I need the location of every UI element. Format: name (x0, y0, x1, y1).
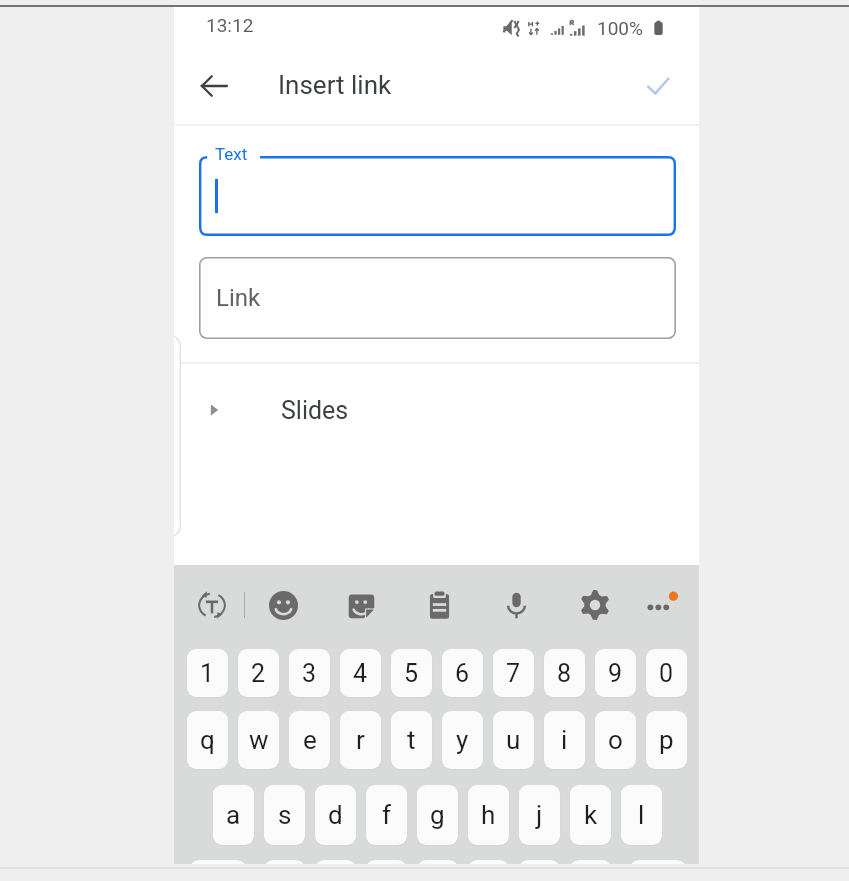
button[interactable]: Back (190, 62, 238, 110)
button[interactable]: y (442, 711, 483, 769)
staticText: i (561, 725, 568, 755)
button[interactable] (315, 860, 356, 864)
button[interactable] (519, 860, 560, 864)
staticText: d (328, 800, 343, 830)
staticText: o (608, 725, 623, 755)
button[interactable]: 3 (289, 649, 330, 697)
button[interactable]: r (340, 711, 381, 769)
staticText: s (278, 800, 292, 830)
button[interactable]: u (493, 711, 534, 769)
staticText: 8 (557, 659, 572, 688)
staticText: w (249, 725, 269, 755)
button[interactable]: s (264, 785, 305, 845)
staticText: l (638, 800, 645, 830)
staticText: t (407, 725, 416, 755)
staticText: f (382, 800, 392, 830)
button[interactable]: i (544, 711, 585, 769)
button[interactable]: 5 (391, 649, 432, 697)
button[interactable]: Shift (190, 860, 246, 864)
button[interactable]: f (366, 785, 407, 845)
staticText: Slides (281, 396, 349, 425)
staticText: p (659, 725, 674, 755)
button[interactable]: d (315, 785, 356, 845)
button[interactable]: t (391, 711, 432, 769)
staticText: h (481, 800, 496, 830)
staticText: 3 (302, 659, 317, 688)
staticText: 6 (455, 659, 470, 688)
button[interactable] (264, 860, 305, 864)
staticText: 7 (506, 659, 521, 688)
staticText: 13:12 (206, 14, 254, 36)
button[interactable]: Text (199, 156, 676, 236)
staticText: Link (216, 284, 261, 312)
button[interactable]: 1 (187, 649, 228, 697)
button[interactable]: w (238, 711, 279, 769)
button[interactable]: a (213, 785, 254, 845)
button[interactable]: 6 (442, 649, 483, 697)
button[interactable]: o (595, 711, 636, 769)
staticText: 100% (597, 17, 643, 39)
staticText: Text (215, 144, 248, 164)
button[interactable]: Done (634, 62, 682, 110)
button[interactable]: e (289, 711, 330, 769)
staticText: e (303, 725, 317, 755)
button[interactable] (417, 860, 458, 864)
button[interactable]: Text conversion (186, 579, 238, 631)
button[interactable]: Clipboard (413, 579, 465, 631)
staticText: j (536, 800, 543, 830)
button[interactable]: h (468, 785, 509, 845)
button[interactable]: Backspace (630, 860, 686, 864)
button[interactable]: j (519, 785, 560, 845)
button[interactable]: 9 (595, 649, 636, 697)
button[interactable]: Settings (569, 579, 621, 631)
button[interactable]: More options (637, 577, 689, 629)
staticText: r (356, 725, 365, 755)
button[interactable]: l (621, 785, 662, 845)
button[interactable]: 4 (340, 649, 381, 697)
staticText: a (226, 800, 241, 830)
button[interactable]: 2 (238, 649, 279, 697)
button[interactable] (468, 860, 509, 864)
staticText: Insert link (278, 70, 392, 100)
button[interactable] (570, 860, 611, 864)
button[interactable]: 7 (493, 649, 534, 697)
button[interactable]: Voice input (490, 579, 542, 631)
button[interactable]: p (646, 711, 687, 769)
button[interactable]: Emoji (257, 579, 309, 631)
staticText: 0 (659, 659, 674, 688)
staticText: k (584, 800, 598, 830)
button[interactable]: Link (199, 257, 676, 339)
button[interactable]: Slides (174, 382, 699, 438)
button[interactable]: 0 (646, 649, 687, 697)
staticText: 4 (353, 659, 368, 688)
staticText: u (506, 725, 521, 755)
staticText: g (430, 800, 445, 830)
button[interactable]: 8 (544, 649, 585, 697)
button[interactable] (366, 860, 407, 864)
button[interactable]: Stickers (335, 579, 387, 631)
staticText: q (200, 725, 215, 755)
staticText: 5 (404, 659, 419, 688)
staticText: 1 (200, 659, 215, 688)
staticText: 9 (608, 659, 623, 688)
staticText: 2 (251, 659, 266, 688)
button[interactable]: k (570, 785, 611, 845)
staticText: y (456, 725, 469, 755)
button[interactable]: q (187, 711, 228, 769)
button[interactable]: g (417, 785, 458, 845)
